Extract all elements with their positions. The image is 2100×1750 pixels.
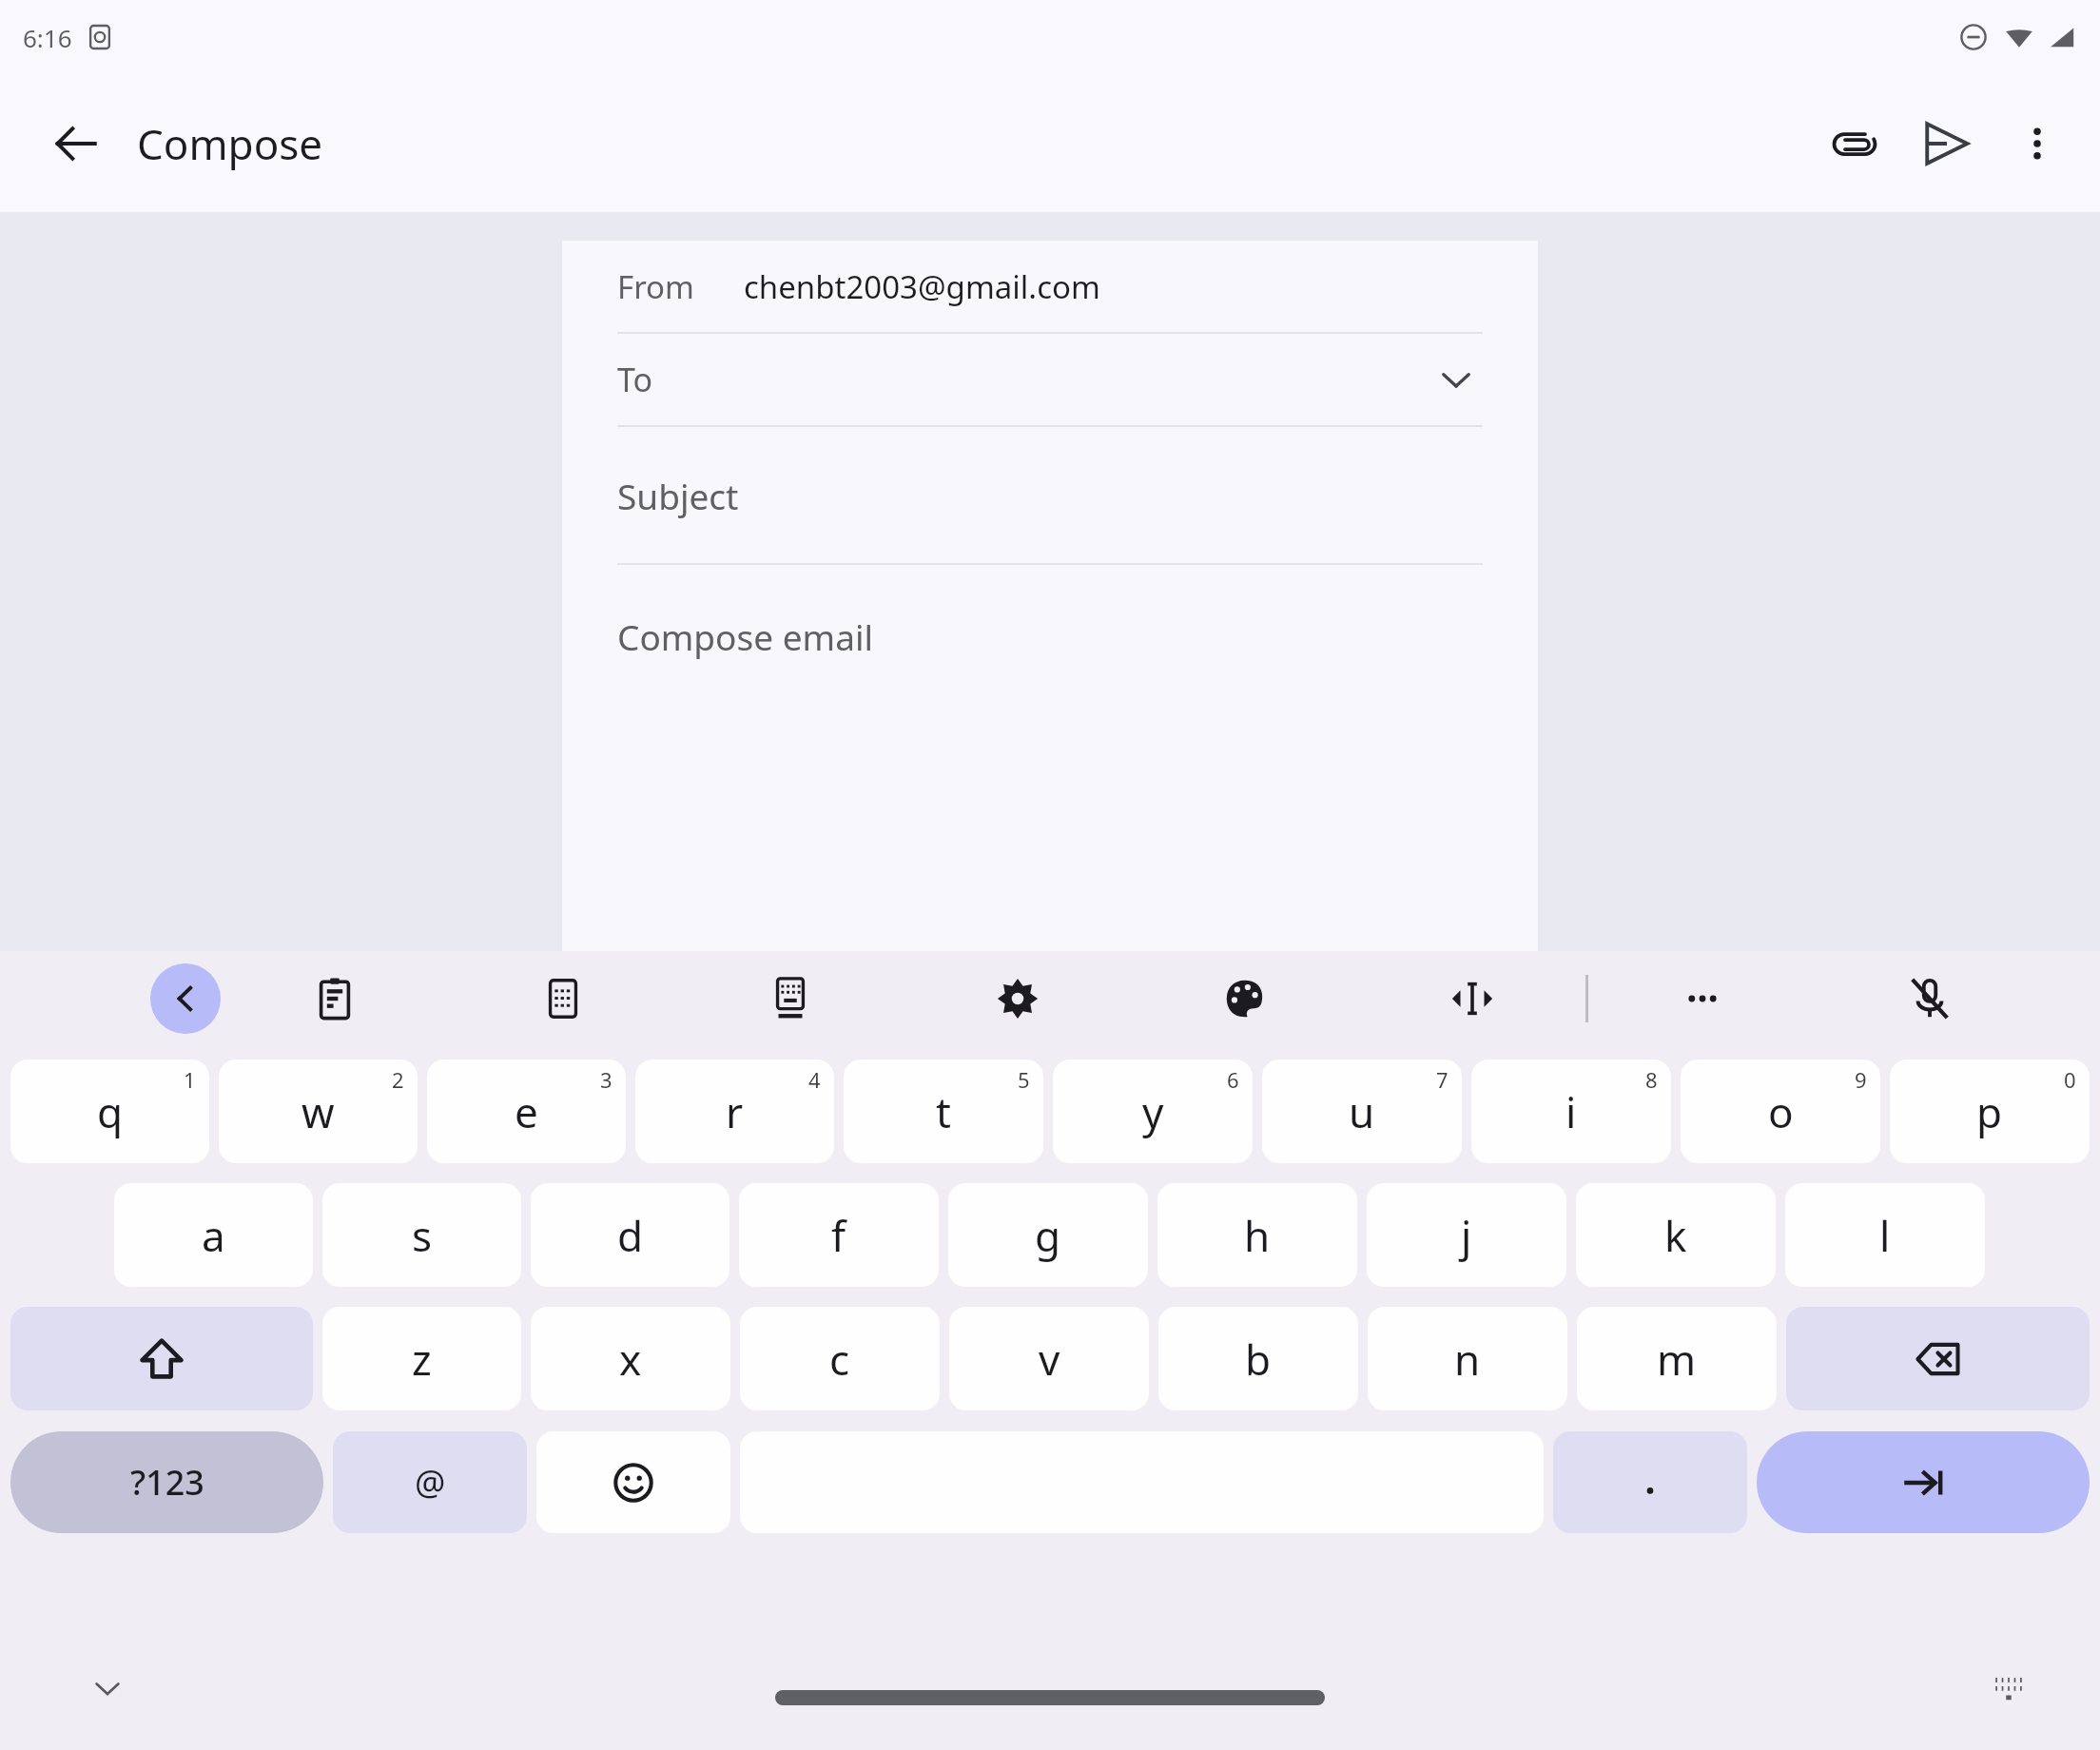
button[interactable]: Backspace <box>1786 1307 2090 1410</box>
button[interactable]: Clipboard <box>221 951 449 1046</box>
button[interactable]: From <box>617 241 1483 332</box>
button[interactable]: Text editing <box>1358 951 1585 1046</box>
staticText: 9 <box>1855 1065 1867 1094</box>
staticText: e <box>515 1083 538 1140</box>
staticText: b <box>1245 1331 1272 1388</box>
staticText: a <box>202 1207 225 1264</box>
button[interactable]: d <box>531 1183 729 1287</box>
staticText: From <box>617 265 694 308</box>
button[interactable]: u <box>1262 1060 1462 1163</box>
staticText: z <box>412 1331 432 1388</box>
staticText: w <box>301 1083 335 1140</box>
staticText: 2 <box>392 1065 404 1094</box>
staticText: o <box>1768 1083 1794 1140</box>
staticText: 1 <box>184 1065 196 1094</box>
button[interactable]: Collapse toolbar <box>150 963 221 1034</box>
staticText: x <box>619 1331 642 1388</box>
staticText: Compose <box>137 115 323 172</box>
button[interactable]: Back <box>38 106 114 182</box>
staticText: 5 <box>1018 1065 1030 1094</box>
staticText: p <box>1976 1083 2003 1140</box>
staticText: l <box>1879 1207 1891 1264</box>
button[interactable]: i <box>1471 1060 1671 1163</box>
button[interactable]: m <box>1577 1307 1777 1410</box>
button[interactable]: More options <box>1992 98 2083 189</box>
button[interactable] <box>1553 1431 1747 1533</box>
button[interactable]: Settings <box>904 951 1131 1046</box>
staticText: Subject <box>617 472 739 519</box>
button[interactable]: e <box>427 1060 626 1163</box>
button[interactable]: f <box>739 1183 939 1287</box>
button[interactable]: Home <box>775 1690 1325 1705</box>
staticText: j <box>1461 1207 1472 1264</box>
staticText: i <box>1565 1083 1577 1140</box>
staticText: f <box>831 1207 846 1264</box>
button[interactable]: One-handed <box>676 951 904 1046</box>
staticText: c <box>829 1331 850 1388</box>
button[interactable]: Attach file <box>1809 98 1900 189</box>
staticText: d <box>617 1207 644 1264</box>
button[interactable]: o <box>1681 1060 1880 1163</box>
staticText: k <box>1664 1207 1687 1264</box>
button[interactable]: Voice input off <box>1816 951 2043 1046</box>
button[interactable]: r <box>635 1060 834 1163</box>
button[interactable]: q <box>10 1060 209 1163</box>
button[interactable]: More <box>1588 951 1816 1046</box>
staticText: chenbt2003@gmail.com <box>744 265 1100 308</box>
button[interactable]: v <box>949 1307 1149 1410</box>
button[interactable]: k <box>1576 1183 1776 1287</box>
button[interactable]: Switch keyboard <box>1980 1660 2037 1717</box>
staticText: s <box>412 1207 433 1264</box>
staticText: 8 <box>1645 1065 1658 1094</box>
button[interactable]: Emoji <box>536 1431 730 1533</box>
button[interactable]: s <box>322 1183 521 1287</box>
staticText: To <box>617 358 653 401</box>
button[interactable]: w <box>219 1060 418 1163</box>
staticText: 0 <box>2064 1065 2076 1094</box>
staticText: r <box>726 1083 744 1140</box>
button[interactable]: @ <box>333 1431 527 1533</box>
button[interactable]: Shift <box>10 1307 313 1410</box>
staticText: t <box>936 1083 951 1140</box>
staticText: 3 <box>600 1065 612 1094</box>
staticText: g <box>1035 1207 1061 1264</box>
staticText: @ <box>415 1459 446 1506</box>
button[interactable]: z <box>322 1307 521 1410</box>
staticText: ?123 <box>130 1459 204 1506</box>
staticText: v <box>1039 1331 1060 1388</box>
button[interactable]: Enter <box>1757 1431 2090 1533</box>
button[interactable]: b <box>1158 1307 1358 1410</box>
button[interactable]: h <box>1157 1183 1357 1287</box>
button[interactable]: c <box>740 1307 940 1410</box>
button[interactable]: To <box>617 334 1483 425</box>
staticText: y <box>1142 1083 1164 1140</box>
staticText: n <box>1454 1331 1481 1388</box>
button[interactable]: Hide keyboard <box>74 1655 141 1721</box>
button[interactable]: x <box>531 1307 730 1410</box>
staticText: q <box>97 1083 124 1140</box>
staticText: 4 <box>808 1065 821 1094</box>
button[interactable]: t <box>844 1060 1043 1163</box>
button[interactable]: p <box>1890 1060 2090 1163</box>
button[interactable]: Send <box>1900 98 1992 189</box>
button[interactable]: g <box>948 1183 1148 1287</box>
button[interactable]: Subject <box>617 427 1483 563</box>
staticText: h <box>1244 1207 1271 1264</box>
button[interactable]: Themes <box>1131 951 1358 1046</box>
button[interactable]: a <box>114 1183 313 1287</box>
button[interactable]: l <box>1785 1183 1985 1287</box>
button[interactable]: Sticker <box>449 951 676 1046</box>
button[interactable]: ?123 <box>10 1431 323 1533</box>
staticText: u <box>1349 1083 1375 1140</box>
button[interactable]: Compose email <box>617 565 1483 708</box>
staticText: Compose email <box>617 612 874 660</box>
button[interactable]: y <box>1053 1060 1253 1163</box>
staticText: m <box>1657 1331 1697 1388</box>
button[interactable]: j <box>1367 1183 1566 1287</box>
staticText: 6:16 <box>23 21 72 54</box>
button[interactable]: n <box>1368 1307 1567 1410</box>
staticText: 6 <box>1227 1065 1239 1094</box>
staticText: 7 <box>1436 1065 1449 1094</box>
